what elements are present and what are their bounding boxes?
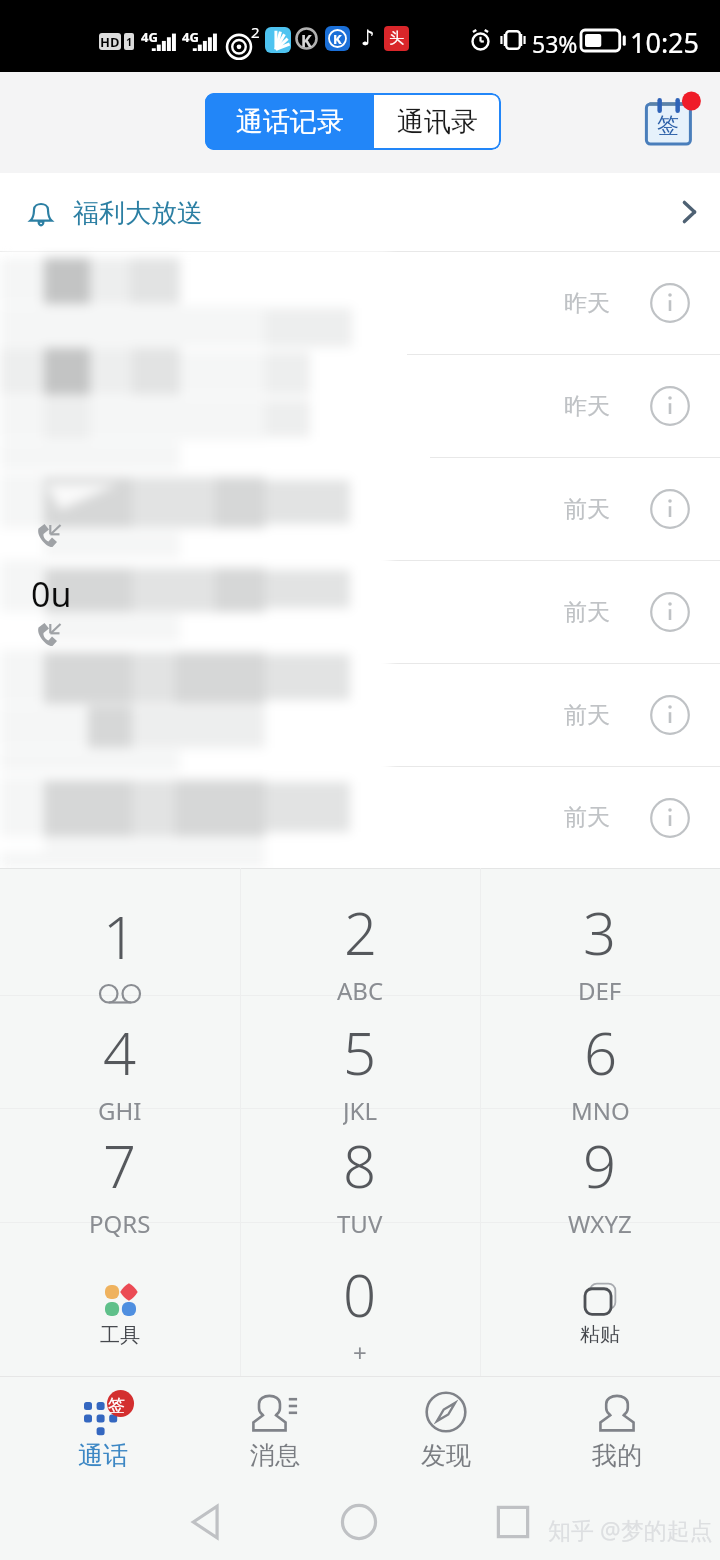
button[interactable]: 通讯录 (374, 93, 501, 150)
button[interactable]: 前天 (0, 561, 720, 663)
button[interactable]: Details (646, 382, 694, 430)
button[interactable]: 工具 (0, 1222, 240, 1376)
staticText: 7 (103, 1126, 137, 1205)
button[interactable]: 签到 (640, 88, 700, 146)
staticText: 通话记录 (236, 105, 344, 139)
button[interactable]: 签 (17, 1377, 189, 1483)
button[interactable]: 4 (0, 995, 240, 1108)
button[interactable]: 粘贴 (480, 1222, 720, 1376)
staticText: 前天 (564, 495, 610, 524)
staticText: ♪ (361, 26, 375, 49)
button[interactable]: 我的 (531, 1377, 702, 1483)
button[interactable]: Home (323, 1484, 395, 1560)
staticText: 昨天 (564, 289, 610, 318)
button[interactable]: 前天 (0, 458, 720, 560)
staticText: 1 (103, 897, 137, 976)
button[interactable]: 3 (480, 868, 720, 995)
button[interactable]: Details (646, 485, 694, 533)
staticText: 前天 (564, 598, 610, 627)
staticText: 粘贴 (580, 1322, 620, 1347)
button[interactable]: 9 (480, 1108, 720, 1222)
staticText: 53% (532, 28, 578, 59)
staticText: 通讯录 (397, 105, 478, 139)
button[interactable]: Back (171, 1484, 243, 1560)
button[interactable]: 0 (240, 1217, 480, 1371)
staticText: 通话 (78, 1440, 128, 1471)
staticText: K (301, 30, 312, 52)
staticText: MNO (571, 1094, 630, 1126)
staticText: 4G (141, 28, 158, 46)
staticText: 4 (103, 1013, 137, 1092)
staticText: 8 (343, 1126, 377, 1205)
button[interactable]: 福利大放送 (0, 173, 720, 252)
staticText: 昨天 (564, 392, 610, 421)
staticText: 前天 (564, 803, 610, 832)
button[interactable]: 8 (240, 1108, 480, 1222)
button[interactable]: Recents (477, 1484, 549, 1560)
staticText: 发现 (421, 1440, 471, 1471)
button[interactable]: 7 (0, 1108, 240, 1222)
staticText: ABC (337, 974, 384, 1007)
staticText: 签 (657, 112, 679, 140)
button[interactable]: Details (646, 279, 694, 327)
staticText: 6 (584, 1013, 618, 1092)
staticText: 0 (343, 1255, 377, 1334)
staticText: 2 (344, 893, 378, 972)
button[interactable]: 昨天 (0, 355, 720, 457)
staticText: K (333, 30, 342, 48)
button[interactable]: 2 (240, 868, 480, 995)
button[interactable]: 前天 (0, 767, 720, 868)
button[interactable]: 消息 (189, 1377, 360, 1483)
staticText: 签 (108, 1395, 125, 1416)
staticText: 1 (126, 34, 133, 49)
staticText: 头 (389, 29, 404, 48)
staticText: 工具 (100, 1323, 140, 1348)
staticText: 福利大放送 (73, 197, 203, 230)
staticText: PQRS (89, 1207, 151, 1240)
button[interactable]: 前天 (0, 664, 720, 766)
button[interactable]: Details (646, 794, 694, 842)
staticText: 前天 (564, 701, 610, 730)
button[interactable]: 发现 (360, 1377, 531, 1483)
staticText: 4G (182, 28, 199, 46)
button[interactable]: 昨天 (0, 252, 720, 354)
button[interactable]: 1 (0, 868, 240, 995)
staticText: HD (100, 33, 120, 50)
staticText: + (353, 1336, 367, 1369)
staticText: JKL (343, 1094, 377, 1126)
staticText: WXYZ (568, 1207, 632, 1240)
staticText: 0u (31, 571, 72, 617)
staticText: 9 (583, 1126, 617, 1205)
staticText: 10:25 (630, 24, 700, 61)
staticText: 2 (251, 22, 260, 42)
staticText: 我的 (592, 1440, 642, 1471)
staticText: GHI (98, 1094, 142, 1126)
button[interactable]: 5 (240, 995, 480, 1108)
staticText: DEF (578, 974, 622, 1007)
button[interactable]: 6 (480, 995, 720, 1108)
button[interactable]: 通话记录 (205, 93, 374, 150)
staticText: 3 (583, 893, 617, 972)
staticText: 消息 (250, 1440, 300, 1471)
staticText: TUV (337, 1207, 383, 1240)
staticText: 知乎 @梦的起点 (548, 1514, 713, 1545)
button[interactable]: Details (646, 691, 694, 739)
staticText: 5 (343, 1013, 377, 1092)
button[interactable]: Details (646, 588, 694, 636)
